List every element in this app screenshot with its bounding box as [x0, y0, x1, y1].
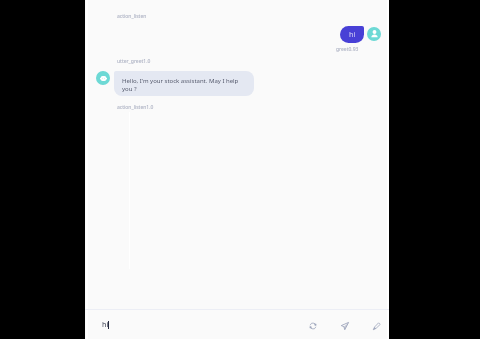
staticText: action_listen1.0	[117, 104, 154, 111]
staticText: utter_greet1.0	[117, 58, 151, 65]
staticText: hi	[349, 30, 356, 40]
button[interactable]: Edit	[368, 317, 384, 333]
staticText: hi	[102, 320, 109, 330]
staticText: greet0.93	[336, 46, 359, 53]
button[interactable]: Hello, I'm your stock assistant. May I h…	[114, 71, 254, 96]
button[interactable]: Assistant avatar	[96, 71, 110, 85]
button[interactable]: Restart conversation	[304, 317, 320, 333]
button[interactable]: hi	[340, 26, 364, 43]
staticText: action_listen	[117, 13, 147, 20]
button[interactable]: User avatar	[367, 27, 381, 41]
button[interactable]: Send	[336, 317, 352, 333]
staticText: Hello, I'm your stock assistant. May I h…	[122, 77, 246, 93]
